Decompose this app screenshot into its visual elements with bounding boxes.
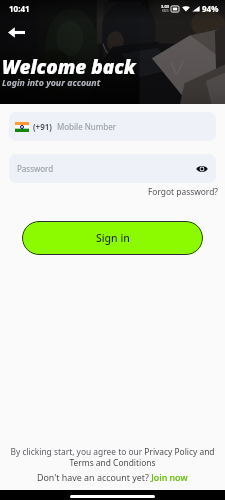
button[interactable]: Back bbox=[6, 22, 26, 42]
staticText: Sign in bbox=[96, 231, 130, 245]
staticText: 94% bbox=[202, 3, 219, 14]
button[interactable]: Password bbox=[9, 154, 216, 183]
staticText: Mobile Number bbox=[57, 121, 116, 132]
staticText: (+91) bbox=[33, 121, 52, 132]
staticText: Login into your account bbox=[2, 77, 101, 89]
staticText: Password bbox=[17, 163, 54, 174]
staticText: Welcome back bbox=[2, 54, 136, 80]
button[interactable]: Don't have an account yet? Join now bbox=[37, 471, 188, 483]
button[interactable]: Forgot password? bbox=[146, 184, 220, 199]
button[interactable]: Show password bbox=[194, 161, 210, 177]
button[interactable]: (+91) bbox=[9, 112, 216, 141]
staticText: 3.03 bbox=[161, 4, 169, 9]
button[interactable]: Sign in bbox=[22, 221, 203, 255]
staticText: By clicking start, you agree to our Priv… bbox=[6, 446, 219, 468]
staticText: 10:41 bbox=[9, 3, 30, 14]
staticText: KB/S bbox=[162, 9, 169, 13]
